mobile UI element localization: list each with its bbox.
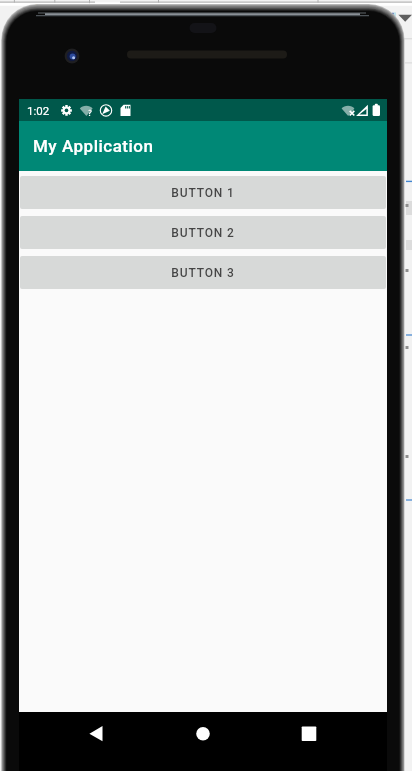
button[interactable]: Home [177,712,229,760]
button[interactable]: BUTTON 1 [20,176,386,209]
staticText: BUTTON 2 [171,226,235,240]
button[interactable]: Back [70,712,122,760]
staticText: BUTTON 3 [171,266,235,280]
button[interactable]: BUTTON 2 [20,216,386,249]
button[interactable]: BUTTON 3 [20,256,386,289]
staticText: 1:02 [27,104,50,117]
staticText: My Application [33,136,154,156]
button[interactable]: Recent apps [283,712,335,760]
staticText: BUTTON 1 [171,186,235,200]
